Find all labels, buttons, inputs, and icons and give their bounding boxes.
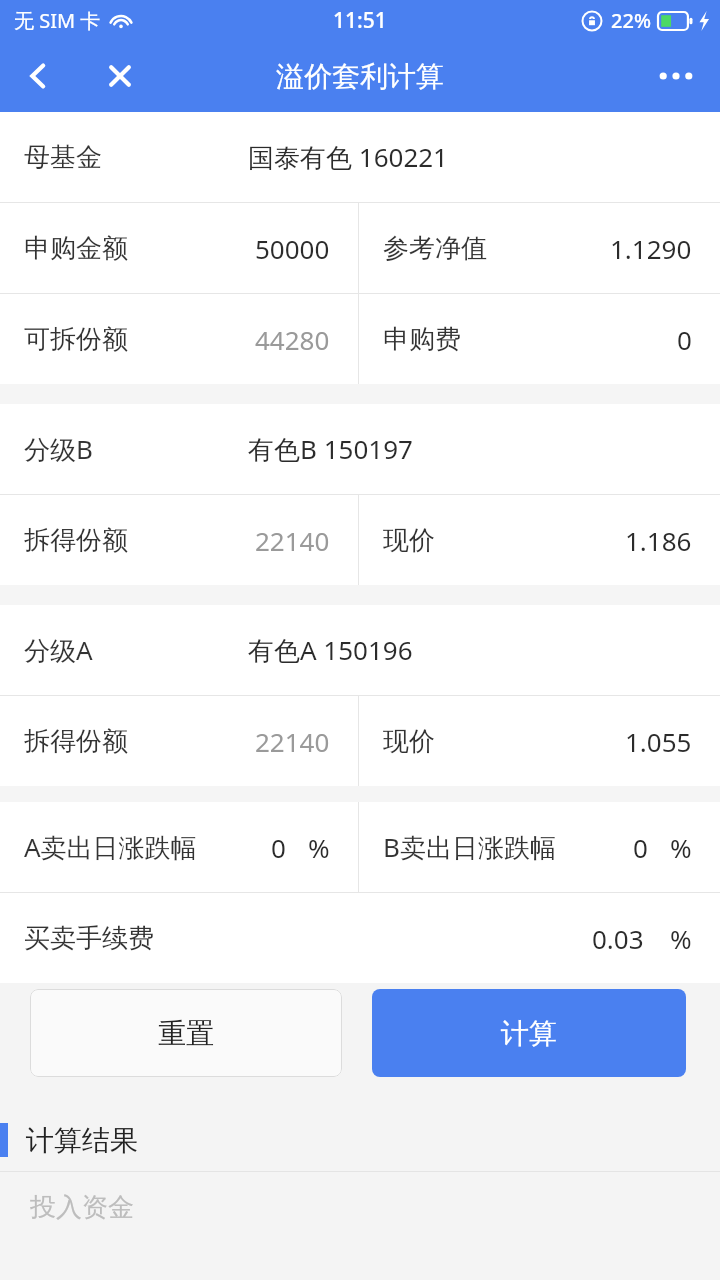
button[interactable]: 分级B — [0, 404, 720, 494]
button[interactable]: 现价 — [359, 696, 720, 786]
staticText: 拆得份额 — [24, 524, 128, 557]
button[interactable]: 计算 — [372, 989, 686, 1077]
button[interactable]: More options — [644, 44, 708, 108]
staticText: 有色B 150197 — [248, 431, 413, 467]
staticText: % — [670, 921, 692, 956]
staticText: % — [670, 830, 692, 865]
button[interactable]: 重置 — [30, 989, 342, 1077]
staticText: 可拆份额 — [24, 323, 128, 356]
staticText: 1.1290 — [610, 231, 692, 266]
staticText: 现价 — [383, 524, 435, 557]
button[interactable]: 分级A — [0, 605, 720, 695]
staticText: 1.055 — [625, 724, 692, 759]
staticText: 申购金额 — [24, 232, 128, 265]
staticText: 无 SIM 卡 — [14, 7, 101, 34]
button[interactable]: 申购费 — [359, 294, 720, 384]
staticText: 分级A — [24, 632, 93, 668]
button[interactable]: 可拆份额 — [0, 294, 358, 384]
staticText: 国泰有色 160221 — [248, 139, 448, 175]
button[interactable]: A卖出日涨跌幅 — [0, 802, 358, 892]
staticText: 分级B — [24, 431, 93, 467]
staticText: B卖出日涨跌幅 — [383, 829, 556, 865]
staticText: 溢价套利计算 — [276, 59, 444, 94]
staticText: 0.03 — [592, 921, 644, 956]
staticText: 参考净值 — [383, 232, 487, 265]
staticText: 拆得份额 — [24, 725, 128, 758]
staticText: 11:51 — [333, 6, 387, 35]
button[interactable]: 买卖手续费 — [0, 893, 720, 983]
staticText: 申购费 — [383, 323, 461, 356]
staticText: 0 — [677, 322, 692, 357]
staticText: 0 — [271, 830, 286, 865]
staticText: 投入资金 — [30, 1191, 134, 1224]
button[interactable]: 拆得份额 — [0, 495, 358, 585]
button[interactable]: 申购金额 — [0, 203, 358, 293]
staticText: 有色A 150196 — [248, 632, 413, 668]
staticText: 重置 — [158, 1016, 214, 1051]
staticText: 22% — [611, 7, 651, 34]
staticText: A卖出日涨跌幅 — [24, 829, 197, 865]
staticText: 22140 — [255, 523, 330, 558]
staticText: 44280 — [255, 322, 330, 357]
staticText: 现价 — [383, 725, 435, 758]
button[interactable]: 拆得份额 — [0, 696, 358, 786]
staticText: 50000 — [255, 231, 330, 266]
staticText: 买卖手续费 — [24, 922, 154, 955]
staticText: 22140 — [255, 724, 330, 759]
button[interactable]: B卖出日涨跌幅 — [359, 802, 720, 892]
button[interactable]: 现价 — [359, 495, 720, 585]
button[interactable]: Back — [6, 44, 70, 108]
button[interactable]: Close — [88, 44, 152, 108]
staticText: 计算结果 — [26, 1123, 138, 1158]
staticText: % — [308, 830, 330, 865]
staticText: 母基金 — [24, 141, 102, 174]
button[interactable]: 母基金 — [0, 112, 720, 202]
staticText: 计算 — [501, 1016, 557, 1051]
staticText: 0 — [633, 830, 648, 865]
button[interactable]: 参考净值 — [359, 203, 720, 293]
staticText: 1.186 — [625, 523, 692, 558]
